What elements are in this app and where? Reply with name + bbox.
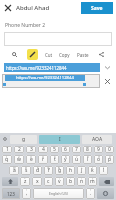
button[interactable]: 5 [50, 146, 59, 153]
staticText: ! [81, 177, 82, 181]
button[interactable]: $ [33, 166, 42, 175]
staticText: e [30, 156, 33, 163]
button[interactable]: Paste [77, 49, 89, 60]
button[interactable]: ' [44, 177, 53, 186]
button[interactable]: Share [96, 49, 107, 60]
button[interactable]: 2 [14, 146, 24, 153]
staticText: u [75, 156, 79, 163]
staticText: @ [13, 166, 16, 170]
button[interactable]: Cut [45, 49, 53, 60]
button[interactable]: Highlight [27, 49, 38, 60]
button[interactable]: 4 [38, 146, 48, 153]
button[interactable]: English (US) [33, 188, 84, 199]
button[interactable]: : [55, 177, 64, 186]
button[interactable]: Shift [2, 177, 18, 186]
staticText: ( [92, 166, 93, 170]
staticText: AOA [92, 136, 103, 143]
staticText: $ [37, 166, 39, 170]
button[interactable]: https://wa.me/923324112844 [4, 63, 100, 72]
staticText: k [91, 167, 94, 174]
button[interactable]: https://wa.me/923324112844 [2, 74, 100, 88]
staticText: 3 [30, 155, 32, 159]
staticText: 2 [18, 155, 20, 159]
button[interactable]: 6 [61, 155, 70, 164]
button[interactable]: Close [0, 0, 16, 16]
button[interactable]: * [20, 177, 30, 186]
button[interactable]: 4 [38, 155, 48, 164]
staticText: 123 [7, 191, 15, 197]
button[interactable]: @ [9, 166, 19, 175]
button[interactable]: 1 [2, 155, 12, 164]
button[interactable]: AOA [82, 135, 112, 144]
button[interactable]: % [44, 166, 53, 175]
button[interactable]: ( [88, 166, 97, 175]
button[interactable]: ) [99, 166, 108, 175]
button[interactable]: 9 [94, 146, 103, 153]
staticText: Paste [77, 52, 89, 58]
staticText: 0 [109, 155, 111, 159]
button[interactable]: Search [9, 49, 20, 60]
button[interactable]: 8 [83, 155, 92, 164]
staticText: h [69, 167, 73, 174]
button[interactable]: - [66, 166, 75, 175]
button[interactable]: 5 [50, 155, 59, 164]
button[interactable]: ; [66, 177, 75, 186]
staticText: 8 [87, 155, 89, 159]
staticText: & [58, 166, 61, 170]
button[interactable]: Emoji [97, 188, 114, 199]
staticText: g [58, 167, 62, 174]
staticText: a [13, 167, 16, 174]
button[interactable]: " [32, 177, 42, 186]
staticText: % [47, 166, 50, 170]
staticText: f [48, 167, 50, 174]
staticText: i [87, 156, 89, 163]
button[interactable]: ! [77, 177, 86, 186]
button[interactable]: 9 [94, 155, 103, 164]
button[interactable]: 123 [2, 188, 20, 199]
staticText: 5 [53, 146, 56, 153]
button[interactable]: 1 [2, 146, 12, 153]
button[interactable]: 3 [26, 146, 36, 153]
button[interactable]: Expand [103, 63, 112, 72]
button[interactable]: 3 [26, 155, 36, 164]
button[interactable]: Clear [100, 74, 114, 88]
button[interactable]: & [55, 166, 64, 175]
button[interactable]: Keyboard settings [1, 133, 9, 145]
button[interactable]: Backspace [99, 177, 114, 186]
button[interactable]: + [77, 166, 86, 175]
button[interactable]: 2 [14, 155, 24, 164]
staticText: q [5, 156, 9, 163]
button[interactable]: g [10, 135, 37, 144]
button[interactable]: ? [86, 188, 95, 199]
button[interactable]: 7 [72, 146, 81, 153]
staticText: ; [70, 177, 71, 181]
staticText: https://wa.me/923324112844 [16, 75, 74, 81]
button[interactable]: 6 [61, 146, 70, 153]
button[interactable]: # [21, 166, 31, 175]
staticText: s [25, 167, 28, 174]
button[interactable]: 7 [72, 155, 81, 164]
button[interactable]: ? [88, 177, 97, 186]
button[interactable] [4, 32, 112, 46]
staticText: . [90, 190, 92, 197]
staticText: Abdul Ahad [16, 4, 81, 12]
staticText: 6 [65, 155, 67, 159]
staticText: + [81, 166, 83, 170]
staticText: x [36, 178, 39, 185]
staticText: Copy [59, 52, 70, 58]
staticText: English (US) [49, 191, 68, 196]
staticText: Cut [45, 52, 53, 58]
staticText: d [36, 167, 40, 174]
staticText: Save [91, 5, 103, 12]
staticText: 3 [30, 146, 33, 153]
button[interactable]: Copy [59, 49, 70, 60]
button[interactable]: 8 [83, 146, 92, 153]
button[interactable]: 0 [105, 155, 114, 164]
button[interactable]: ! [22, 188, 31, 199]
staticText: 0 [108, 146, 111, 153]
button[interactable]: 0 [105, 146, 114, 153]
staticText: : [59, 177, 60, 181]
staticText: - [70, 166, 71, 170]
button[interactable]: Save [81, 2, 113, 14]
button[interactable]: I [39, 135, 80, 144]
